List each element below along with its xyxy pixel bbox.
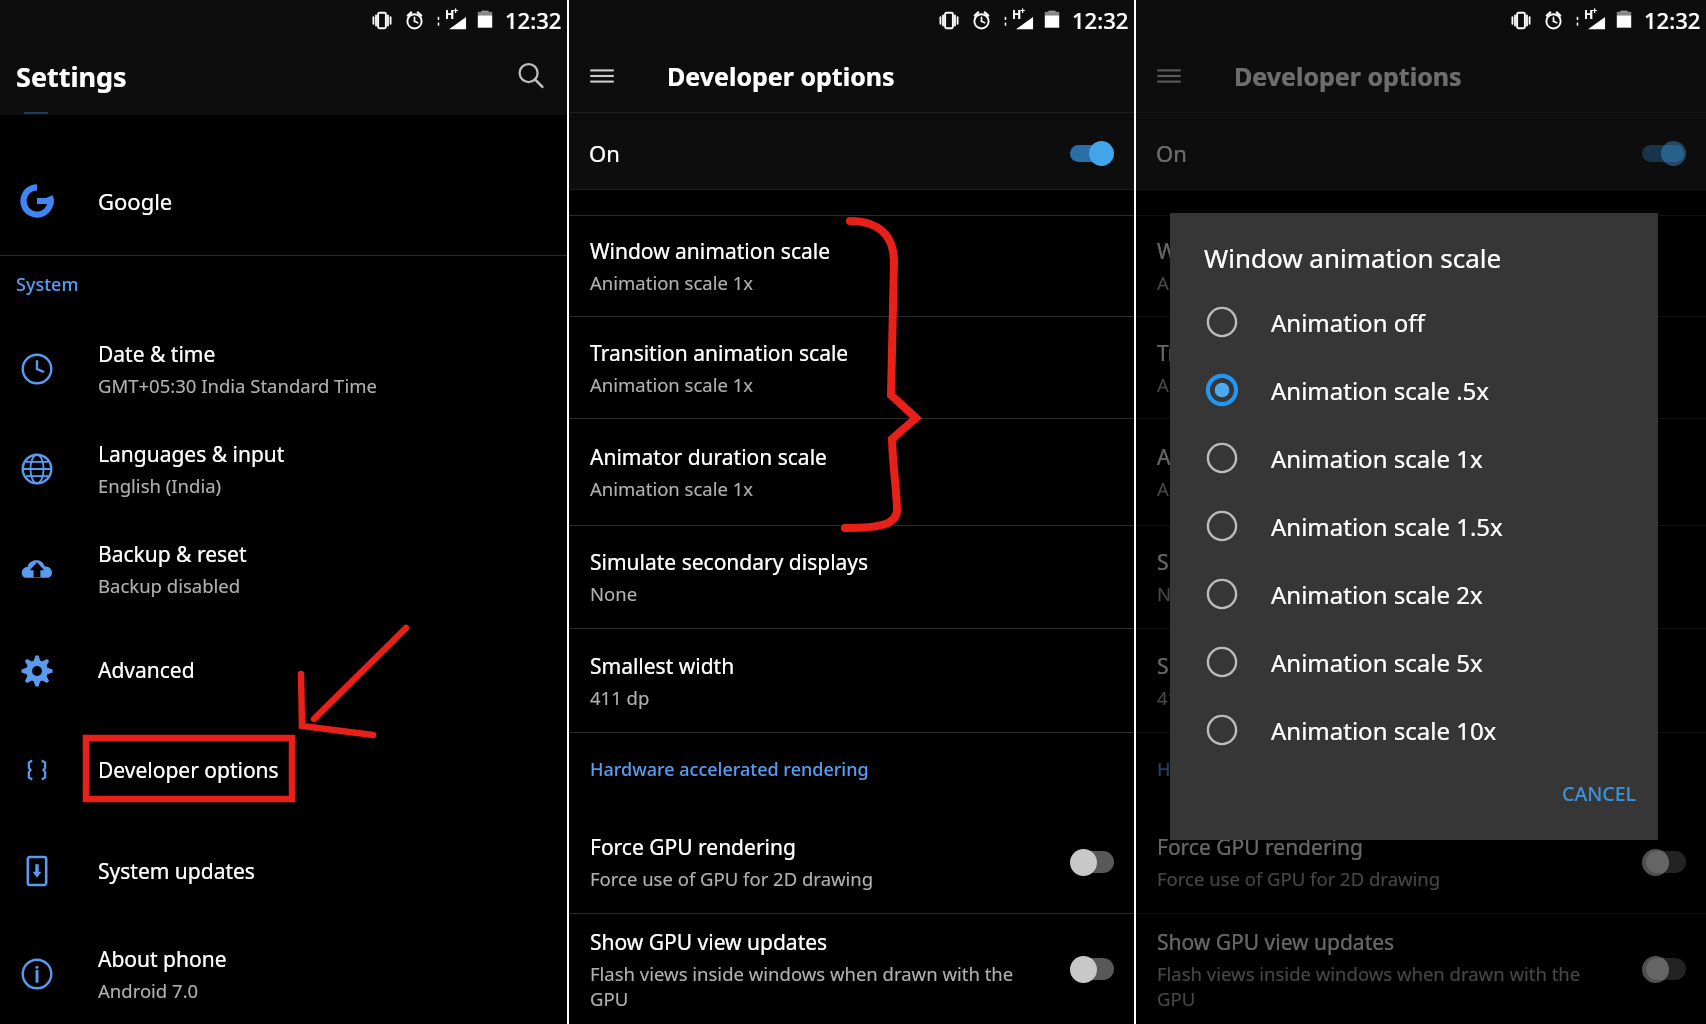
staticText: 12:32: [1644, 5, 1701, 35]
staticText: System updates: [98, 857, 255, 886]
button[interactable]: Animation scale 5x: [1170, 628, 1658, 696]
staticText: Settings: [16, 58, 127, 95]
button[interactable]: Animation scale 10x: [1170, 696, 1658, 764]
staticText: CANCEL: [1562, 780, 1636, 807]
button[interactable]: Transition animation scale: [569, 317, 1134, 418]
staticText: Animation scale 1.5x: [1271, 510, 1503, 543]
button[interactable]: Smallest width: [1136, 629, 1706, 732]
button[interactable]: Transition animation scale: [1136, 317, 1706, 418]
button[interactable]: Search: [509, 54, 553, 98]
button[interactable]: Simulate secondary displays: [569, 526, 1134, 628]
staticText: Animation scale 10x: [1271, 714, 1497, 747]
staticText: On: [1156, 138, 1187, 168]
button[interactable]: Animation scale 1x: [1170, 424, 1658, 492]
button[interactable]: Toggle: [1642, 138, 1686, 168]
staticText: Date & time: [98, 340, 216, 369]
staticText: Google: [98, 186, 173, 216]
staticText: About phone: [98, 945, 227, 974]
staticText: Backup disabled: [98, 573, 241, 598]
staticText: Animation scale 2x: [1271, 578, 1483, 611]
staticText: Flash views inside windows when drawn wi…: [590, 961, 1026, 1011]
staticText: H: [1012, 6, 1022, 22]
staticText: None: [590, 581, 638, 606]
button[interactable]: Toggle: [1070, 138, 1114, 168]
button[interactable]: Developer options: [0, 722, 567, 818]
button[interactable]: Animation scale 1.5x: [1170, 492, 1658, 560]
staticText: 12:32: [505, 5, 562, 35]
button[interactable]: Show GPU view updates: [1136, 914, 1706, 1024]
staticText: 411 dp: [590, 685, 650, 710]
staticText: Animation scale 1x: [590, 476, 754, 501]
button[interactable]: Menu: [581, 55, 623, 97]
staticText: +: [453, 4, 459, 16]
staticText: Animation off: [1271, 306, 1425, 339]
staticText: Force GPU rendering: [1157, 833, 1363, 862]
staticText: +: [1592, 4, 1598, 16]
button[interactable]: Date & time: [0, 319, 567, 419]
staticText: Animation scale 1x: [1157, 270, 1321, 295]
button[interactable]: Smallest width: [569, 629, 1134, 732]
staticText: Simulate secondary displays: [590, 548, 869, 577]
button[interactable]: Animation scale .5x: [1170, 356, 1658, 424]
button[interactable]: Animation off: [1170, 288, 1658, 356]
button[interactable]: On: [569, 116, 1134, 190]
button[interactable]: Window animation scale: [1136, 216, 1706, 316]
staticText: Window animation scale: [590, 237, 831, 266]
staticText: Smallest width: [1157, 652, 1302, 681]
staticText: Window animation scale: [1204, 240, 1502, 275]
button[interactable]: Toggle: [1070, 847, 1114, 877]
staticText: Backup & reset: [98, 540, 247, 569]
staticText: +: [1020, 4, 1026, 16]
button[interactable]: Animator duration scale: [1136, 419, 1706, 525]
staticText: Animation scale 1x: [590, 372, 754, 397]
button[interactable]: Languages & input: [0, 419, 567, 519]
button[interactable]: About phone: [0, 924, 567, 1024]
staticText: Force GPU rendering: [590, 833, 796, 862]
staticText: Flash views inside windows when drawn wi…: [1157, 961, 1593, 1011]
staticText: Animation scale 1x: [590, 270, 754, 295]
button[interactable]: CANCEL: [1550, 772, 1648, 815]
staticText: GMT+05:30 India Standard Time: [98, 373, 377, 398]
staticText: Animator duration scale: [1157, 443, 1394, 472]
button[interactable]: Force GPU rendering: [569, 811, 1134, 913]
button[interactable]: Animator duration scale: [569, 419, 1134, 525]
staticText: Transition animation scale: [590, 339, 849, 368]
staticText: Transition animation scale: [1157, 339, 1416, 368]
button[interactable]: Google: [0, 156, 567, 246]
staticText: Languages & input: [98, 440, 285, 469]
staticText: Show GPU view updates: [590, 928, 828, 957]
button[interactable]: System updates: [0, 818, 567, 924]
staticText: Hardware accelerated rendering: [1157, 757, 1436, 782]
staticText: English (India): [98, 473, 222, 498]
button[interactable]: On: [1136, 116, 1706, 190]
button[interactable]: Menu: [1148, 55, 1190, 97]
staticText: Developer options: [667, 59, 895, 93]
staticText: Force use of GPU for 2D drawing: [590, 866, 874, 891]
staticText: Animation scale 1x: [1157, 476, 1321, 501]
button[interactable]: Animation scale 2x: [1170, 560, 1658, 628]
button[interactable]: Toggle: [1642, 954, 1686, 984]
staticText: System: [16, 272, 79, 297]
staticText: H: [1584, 6, 1594, 22]
staticText: Developer options: [98, 756, 279, 785]
staticText: 12:32: [1072, 5, 1129, 35]
button[interactable]: Simulate secondary displays: [1136, 526, 1706, 628]
staticText: Animation scale 1x: [1157, 372, 1321, 397]
staticText: Android 7.0: [98, 978, 199, 1003]
button[interactable]: Backup & reset: [0, 519, 567, 619]
staticText: Simulate secondary displays: [1157, 548, 1436, 577]
staticText: H: [445, 6, 455, 22]
staticText: Animation scale .5x: [1271, 374, 1490, 407]
button[interactable]: Toggle: [1070, 954, 1114, 984]
staticText: Window animation scale: [1157, 237, 1398, 266]
button[interactable]: Advanced: [0, 619, 567, 722]
staticText: Animator duration scale: [590, 443, 827, 472]
staticText: 411 dp: [1157, 685, 1217, 710]
staticText: Advanced: [98, 656, 195, 685]
button[interactable]: Toggle: [1642, 847, 1686, 877]
button[interactable]: Force GPU rendering: [1136, 811, 1706, 913]
button[interactable]: Window animation scale: [569, 216, 1134, 316]
staticText: Force use of GPU for 2D drawing: [1157, 866, 1441, 891]
button[interactable]: Show GPU view updates: [569, 914, 1134, 1024]
staticText: Developer options: [1234, 59, 1462, 93]
